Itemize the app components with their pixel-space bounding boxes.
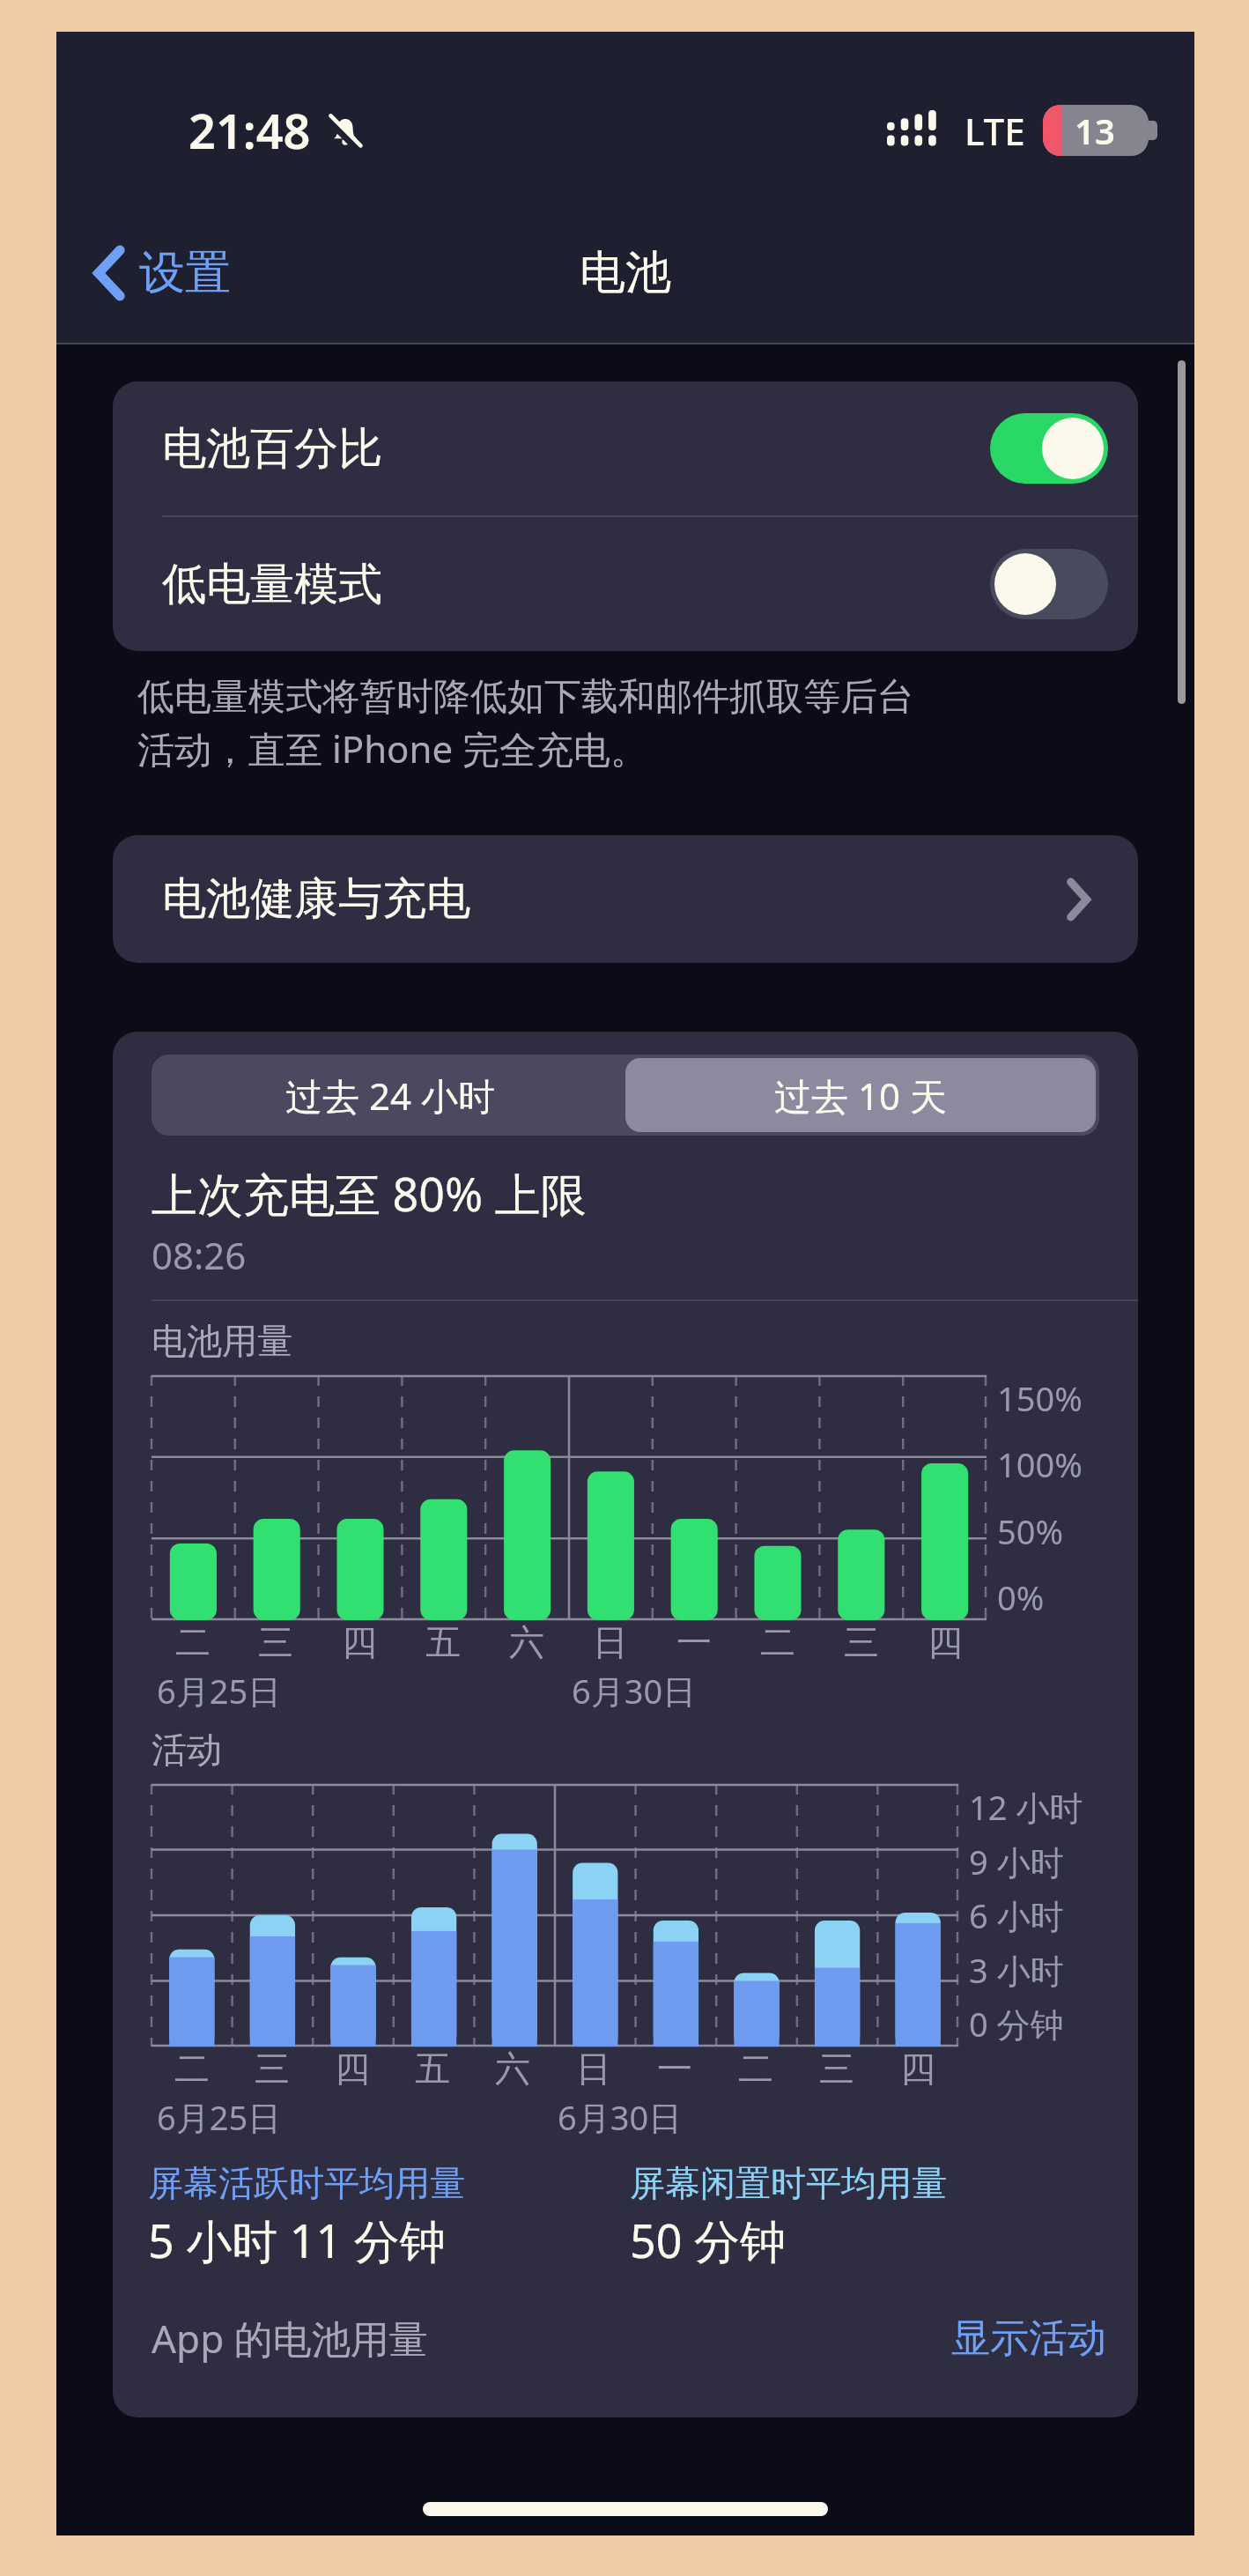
button[interactable]: 低电量模式	[113, 517, 1138, 651]
staticText: 6月30日	[558, 2094, 683, 2140]
staticText: 设置	[139, 244, 231, 302]
staticText: 50%	[997, 1508, 1064, 1554]
staticText: 13	[1075, 107, 1115, 154]
staticText: 屏幕闲置时平均用量	[630, 2161, 947, 2205]
button[interactable]: 过去 10 天	[625, 1058, 1096, 1132]
staticText: 低电量模式将暂时降低如下载和邮件抓取等后台 活动，直至 iPhone 完全充电。	[137, 674, 914, 774]
staticText: 过去 24 小时	[285, 1070, 495, 1121]
staticText: 三	[258, 1620, 293, 1664]
staticText: 电池百分比	[162, 421, 382, 477]
staticText: 低电量模式	[162, 557, 382, 612]
staticText: 12 小时	[969, 1784, 1083, 1830]
staticText: 3 小时	[969, 1947, 1064, 1993]
staticText: 一	[676, 1620, 712, 1664]
staticText: App 的电池用量	[152, 2312, 428, 2365]
button[interactable]: 过去 24 小时	[155, 1058, 625, 1132]
staticText: 0 分钟	[969, 2001, 1064, 2047]
button[interactable]: 低电量模式 关闭	[990, 549, 1108, 619]
staticText: 21:48	[188, 98, 311, 163]
staticText: 一	[657, 2047, 692, 2091]
staticText: 过去 10 天	[774, 1070, 947, 1121]
staticText: 三	[819, 2047, 854, 2091]
staticText: 四	[342, 1620, 377, 1664]
staticText: 六	[495, 2047, 530, 2091]
button[interactable]: 电池百分比 开启	[990, 413, 1108, 484]
staticText: 五	[415, 2047, 450, 2091]
staticText: 显示活动	[951, 2314, 1106, 2363]
staticText: 六	[509, 1620, 544, 1664]
staticText: 6月25日	[157, 2094, 282, 2140]
staticText: 电池健康与充电	[162, 871, 470, 927]
staticText: 50 分钟	[630, 2209, 787, 2271]
staticText: 二	[760, 1620, 795, 1664]
staticText: 9 小时	[969, 1839, 1064, 1884]
staticText: 6月25日	[157, 1668, 282, 1714]
staticText: 日	[576, 2047, 611, 2091]
staticText: 电池用量	[152, 1319, 292, 1363]
staticText: 四	[928, 1620, 963, 1664]
staticText: 150%	[997, 1375, 1083, 1421]
staticText: 日	[593, 1620, 628, 1664]
staticText: 二	[175, 1620, 211, 1664]
staticText: 上次充电至 80% 上限	[152, 1162, 587, 1225]
button[interactable]: 电池百分比	[113, 381, 1138, 515]
staticText: 电池	[580, 244, 671, 302]
staticText: 0%	[997, 1574, 1045, 1620]
button[interactable]: 电池健康与充电	[113, 835, 1138, 963]
staticText: 活动	[152, 1728, 222, 1772]
staticText: 6 小时	[969, 1892, 1064, 1938]
staticText: 二	[174, 2047, 210, 2091]
staticText: 四	[900, 2047, 935, 2091]
staticText: 屏幕活跃时平均用量	[148, 2161, 465, 2205]
staticText: 四	[335, 2047, 370, 2091]
staticText: 二	[738, 2047, 773, 2091]
button[interactable]: 设置	[79, 230, 247, 316]
staticText: 08:26	[152, 1230, 247, 1280]
staticText: 五	[425, 1620, 461, 1664]
staticText: LTE	[964, 106, 1025, 156]
button[interactable]: 显示活动	[951, 2314, 1106, 2363]
staticText: 三	[255, 2047, 290, 2091]
staticText: 5 小时 11 分钟	[148, 2209, 446, 2271]
staticText: 100%	[997, 1441, 1083, 1487]
staticText: 6月30日	[572, 1668, 697, 1714]
staticText: 三	[844, 1620, 879, 1664]
